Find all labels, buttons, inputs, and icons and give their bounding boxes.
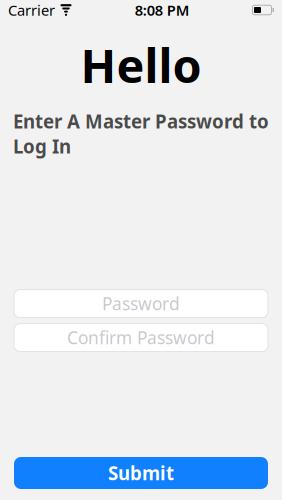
staticText: Password [102, 292, 180, 315]
staticText: Enter A Master Password to Log In [13, 109, 269, 159]
button[interactable]: Submit [14, 457, 268, 489]
staticText: Carrier [8, 0, 55, 20]
staticText: 8:08 PM [135, 0, 190, 20]
staticText: Confirm Password [67, 326, 215, 349]
staticText: Submit [108, 461, 174, 485]
staticText: Hello [80, 34, 201, 96]
